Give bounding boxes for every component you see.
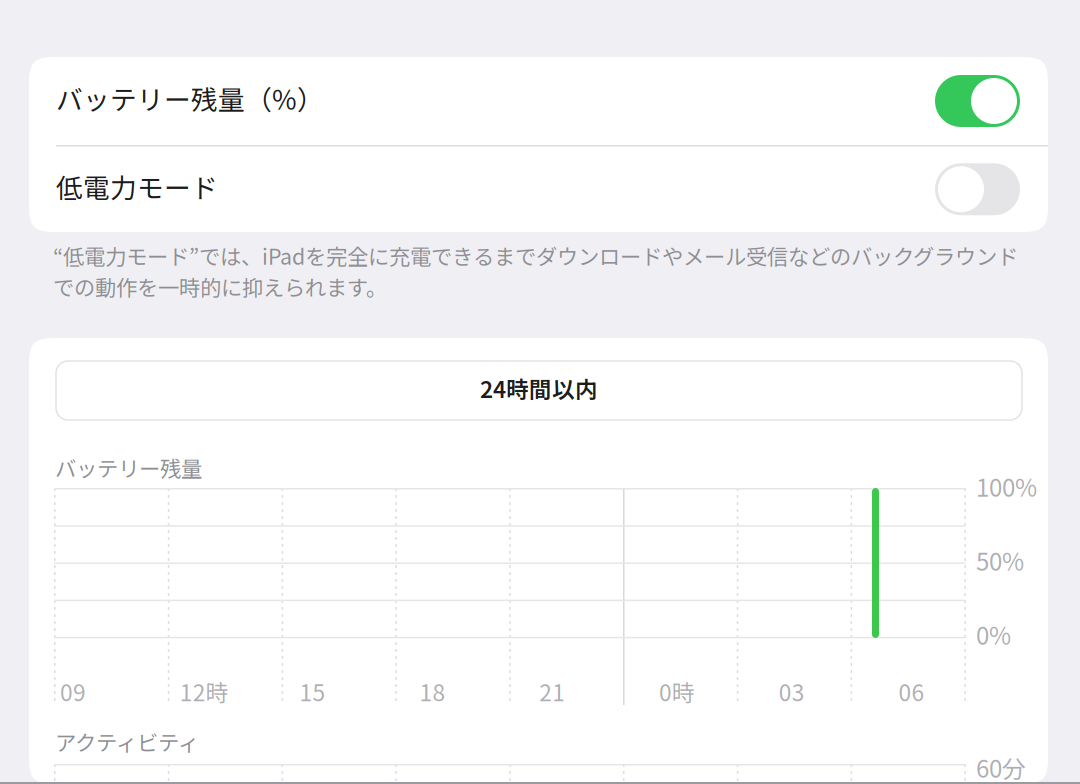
staticText: 50% xyxy=(976,543,1024,578)
staticText: 0時 xyxy=(659,675,695,708)
staticText: 09 xyxy=(60,675,86,708)
staticText: アクティビティ xyxy=(55,726,199,757)
staticText: “低電力モード”では、iPadを完全に充電できるまでダウンロードやメール受信など… xyxy=(53,240,1018,302)
staticText: 12時 xyxy=(180,675,229,708)
staticText: 低電力モード xyxy=(56,167,218,205)
button[interactable]: バッテリー残量（%） xyxy=(29,57,1048,145)
staticText: 18 xyxy=(419,675,445,708)
staticText: バッテリー残量（%） xyxy=(56,79,324,117)
button[interactable]: 低電力モード xyxy=(29,146,1048,232)
staticText: 21 xyxy=(539,675,565,708)
button[interactable]: 24時間以内 xyxy=(56,361,1022,420)
staticText: 24時間以内 xyxy=(480,372,598,404)
staticText: 06 xyxy=(899,675,925,708)
staticText: バッテリー残量 xyxy=(55,452,202,483)
staticText: 0% xyxy=(976,617,1011,652)
staticText: 15 xyxy=(300,675,326,708)
staticText: 60分 xyxy=(976,750,1026,784)
staticText: 100% xyxy=(976,469,1037,504)
staticText: 03 xyxy=(779,675,805,708)
